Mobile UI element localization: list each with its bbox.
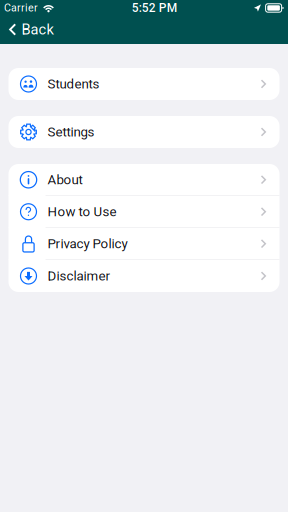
staticText: 5:52 PM bbox=[132, 1, 177, 15]
staticText: Disclaimer bbox=[47, 268, 110, 284]
button[interactable]: Settings bbox=[8, 116, 279, 148]
staticText: How to Use bbox=[47, 204, 116, 219]
staticText: Carrier bbox=[4, 2, 38, 14]
button[interactable]: Back bbox=[0, 15, 53, 44]
staticText: Privacy Policy bbox=[47, 236, 127, 251]
button[interactable]: How to Use bbox=[8, 196, 279, 228]
staticText: Settings bbox=[47, 124, 94, 140]
button[interactable]: Disclaimer bbox=[8, 260, 279, 292]
button[interactable]: About bbox=[8, 164, 279, 196]
staticText: Students bbox=[47, 76, 99, 92]
button[interactable]: Privacy Policy bbox=[8, 228, 279, 260]
button[interactable]: Students bbox=[8, 68, 279, 100]
staticText: About bbox=[47, 172, 82, 187]
staticText: Back bbox=[21, 21, 53, 38]
